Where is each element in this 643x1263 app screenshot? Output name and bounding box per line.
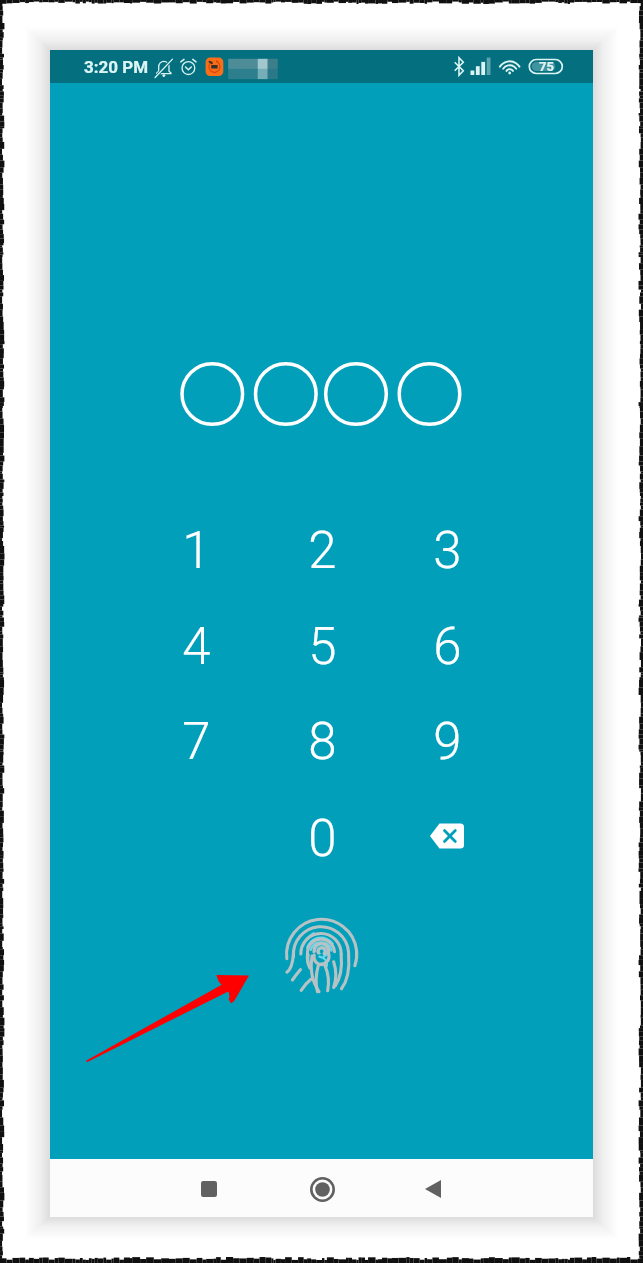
button[interactable]: Recents	[181, 1161, 237, 1217]
button[interactable]: 2	[282, 517, 362, 585]
button[interactable]: 7	[156, 708, 236, 776]
button[interactable]: 1	[156, 517, 236, 585]
staticText: 3	[433, 521, 462, 581]
staticText: 5	[308, 617, 337, 677]
button[interactable]: Back	[405, 1161, 461, 1217]
button[interactable]: Home	[294, 1161, 350, 1217]
button[interactable]: 5	[282, 613, 362, 681]
button[interactable]: 6	[407, 613, 487, 681]
staticText: 7	[182, 712, 211, 772]
button[interactable]: Backspace	[407, 802, 487, 870]
staticText: 4	[182, 617, 211, 677]
button[interactable]: 9	[407, 708, 487, 776]
staticText: 3:20 PM	[84, 57, 149, 77]
staticText: 0	[308, 809, 337, 869]
staticText: 75	[539, 59, 554, 74]
button[interactable]: 3	[407, 517, 487, 585]
staticText: 9	[433, 712, 462, 772]
staticText: 8	[308, 712, 337, 772]
staticText: 1	[182, 521, 211, 581]
button[interactable]: Unlock with fingerprint	[276, 909, 366, 999]
button[interactable]: 4	[156, 613, 236, 681]
button[interactable]: 0	[282, 805, 362, 873]
button[interactable]: 8	[282, 708, 362, 776]
staticText: 6	[433, 617, 462, 677]
staticText: 2	[308, 521, 337, 581]
